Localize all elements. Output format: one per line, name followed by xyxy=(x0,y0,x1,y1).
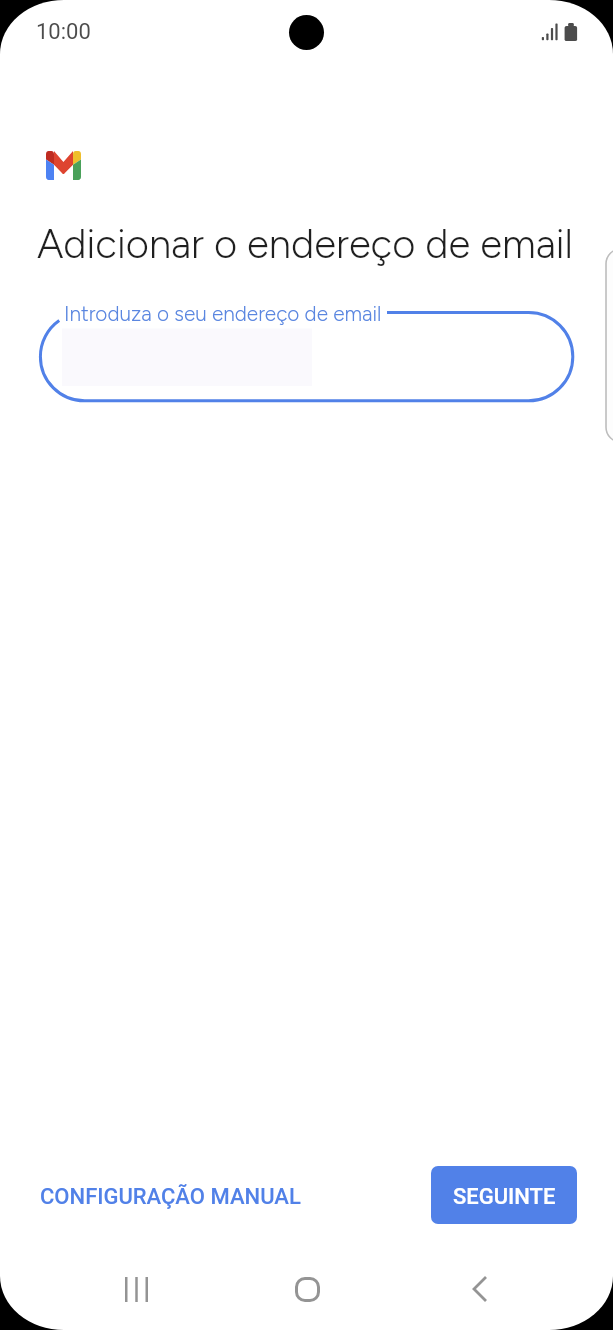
button[interactable]: Back xyxy=(443,1253,515,1325)
button[interactable]: CONFIGURAÇÃO MANUAL xyxy=(26,1174,315,1220)
staticText: CONFIGURAÇÃO MANUAL xyxy=(40,1184,301,1210)
staticText: 10:00 xyxy=(36,19,91,45)
button[interactable]: Recent apps xyxy=(99,1253,171,1325)
button[interactable]: Home xyxy=(271,1253,343,1325)
staticText: Introduza o seu endereço de email xyxy=(64,301,382,326)
button[interactable]: Introduza o seu endereço de email xyxy=(0,0,613,1330)
button[interactable]: SEGUINTE xyxy=(431,1166,577,1224)
staticText: Adicionar o endereço de email xyxy=(37,220,573,268)
staticText: SEGUINTE xyxy=(453,1184,556,1210)
